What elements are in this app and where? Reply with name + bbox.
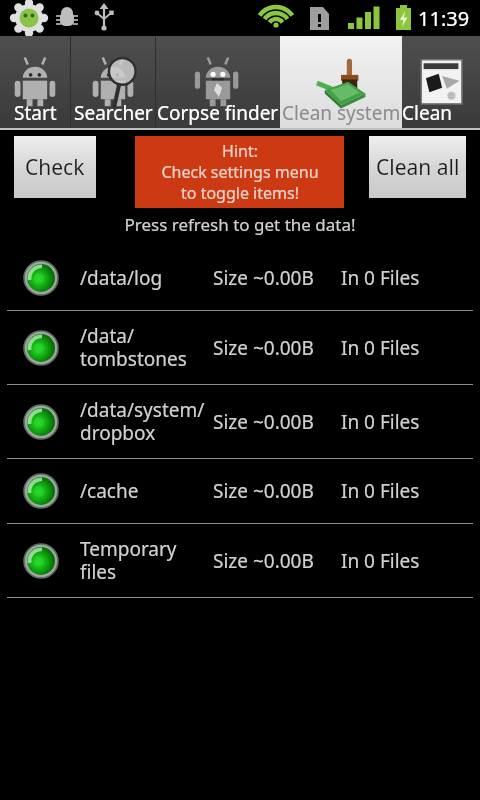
button[interactable]: /data/ tombstones (0, 311, 480, 384)
button[interactable]: Clean app (402, 36, 480, 130)
staticText: In 0 Files (341, 335, 420, 361)
staticText: Temporary files (80, 536, 177, 585)
staticText: Size ~0.00B (213, 335, 341, 361)
staticText: /data/system/ dropbox (80, 397, 205, 446)
button[interactable]: Corpse finder (156, 36, 280, 130)
staticText: /data/log (80, 265, 163, 291)
button[interactable]: Check (14, 136, 96, 198)
staticText: In 0 Files (341, 478, 420, 504)
staticText: Searcher (74, 100, 153, 126)
staticText: In 0 Files (341, 265, 420, 291)
button[interactable]: /data/log (0, 246, 480, 310)
staticText: Start (14, 100, 57, 126)
staticText: Size ~0.00B (213, 409, 341, 435)
button[interactable]: /cache (0, 459, 480, 523)
staticText: Corpse finder (157, 100, 279, 126)
staticText: Clean app (402, 100, 480, 126)
staticText: In 0 Files (341, 409, 420, 435)
button[interactable]: /data/system/ dropbox (0, 385, 480, 458)
staticText: Clean system (282, 100, 401, 126)
button[interactable]: Temporary files (0, 524, 480, 597)
staticText: Press refresh to get the data! (0, 213, 480, 236)
staticText: Size ~0.00B (213, 478, 341, 504)
button[interactable]: Searcher (71, 36, 155, 130)
staticText: /cache (80, 478, 139, 504)
staticText: Check (25, 153, 85, 182)
button[interactable]: Clean all (369, 136, 466, 198)
button[interactable]: Start (0, 36, 70, 130)
staticText: Size ~0.00B (213, 265, 341, 291)
button[interactable]: Clean system (280, 36, 402, 130)
staticText: /data/ tombstones (80, 323, 187, 372)
staticText: Hint: Check settings menu to toggle item… (161, 140, 319, 204)
button[interactable]: Hint: Check settings menu to toggle item… (135, 136, 344, 208)
staticText: Clean all (376, 153, 460, 182)
staticText: In 0 Files (341, 548, 420, 574)
staticText: 11:39 (418, 5, 470, 32)
staticText: Size ~0.00B (213, 548, 341, 574)
